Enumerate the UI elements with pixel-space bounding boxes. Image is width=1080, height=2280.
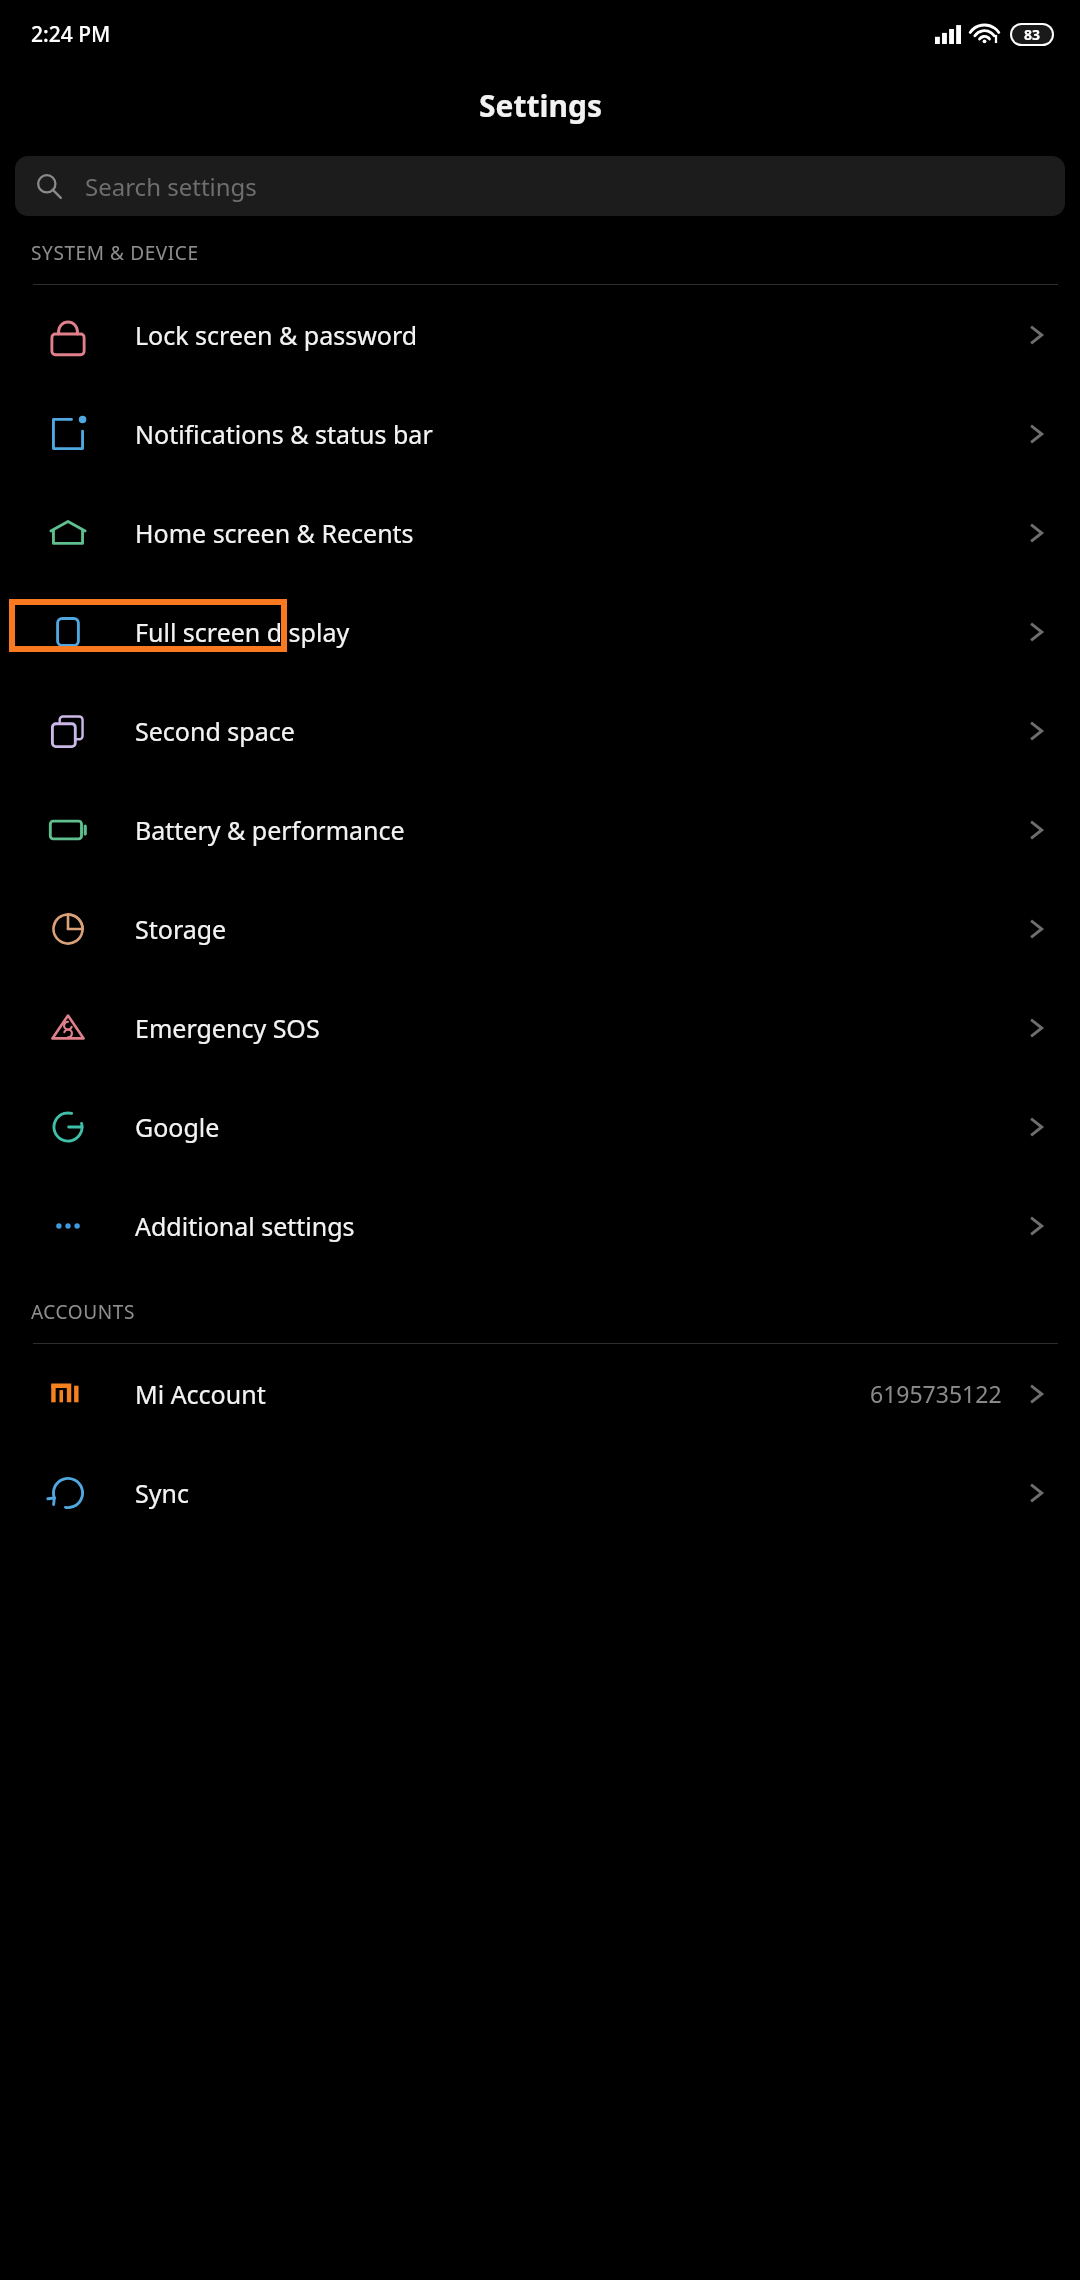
button[interactable]: Notifications: [0, 384, 1080, 483]
other: Second space: [0, 705, 135, 757]
button[interactable]: Google: [0, 1077, 1080, 1176]
other: Search: [36, 173, 63, 200]
button[interactable]: Full screen display: [0, 582, 1080, 681]
button[interactable]: Home screen: [0, 483, 1080, 582]
staticText: SYSTEM & DEVICE: [31, 240, 199, 266]
staticText: 83: [1024, 25, 1041, 44]
other: Mi Account: [0, 1368, 135, 1420]
button[interactable]: Second space: [0, 681, 1080, 780]
staticText: 6195735122: [870, 1378, 1002, 1409]
other: Google: [0, 1101, 135, 1153]
button[interactable]: Search: [15, 156, 1065, 216]
staticText: Second space: [135, 714, 1020, 748]
staticText: Settings: [479, 85, 602, 126]
other: Additional settings: [0, 1200, 135, 1252]
staticText: Storage: [135, 912, 1020, 946]
button[interactable]: Mi Account: [0, 1344, 1080, 1443]
staticText: Additional settings: [135, 1209, 1020, 1243]
staticText: Full screen display: [135, 615, 1020, 649]
button[interactable]: Storage: [0, 879, 1080, 978]
other: Battery: [0, 804, 135, 856]
staticText: Home screen & Recents: [135, 516, 1020, 550]
staticText: Google: [135, 1110, 1020, 1144]
other: Emergency SOS: [0, 1002, 135, 1054]
staticText: Emergency SOS: [135, 1011, 1020, 1045]
staticText: Mi Account: [135, 1377, 870, 1411]
other: Full screen display: [0, 606, 135, 658]
button[interactable]: Additional settings: [0, 1176, 1080, 1275]
staticText: 2:24 PM: [31, 20, 111, 49]
other: Notifications: [0, 408, 135, 460]
button[interactable]: Battery: [0, 780, 1080, 879]
button[interactable]: Lock screen: [0, 285, 1080, 384]
staticText: Battery & performance: [135, 813, 1020, 847]
other: Storage: [0, 903, 135, 955]
staticText: Notifications & status bar: [135, 417, 1020, 451]
other: Lock screen: [0, 309, 135, 361]
staticText: Lock screen & password: [135, 318, 1020, 352]
staticText: Search settings: [85, 170, 257, 203]
other: Home screen: [0, 507, 135, 559]
staticText: Sync: [135, 1476, 1020, 1510]
staticText: ACCOUNTS: [31, 1299, 135, 1325]
button[interactable]: Emergency SOS: [0, 978, 1080, 1077]
button[interactable]: Sync: [0, 1443, 1080, 1542]
other: Sync: [0, 1467, 135, 1519]
